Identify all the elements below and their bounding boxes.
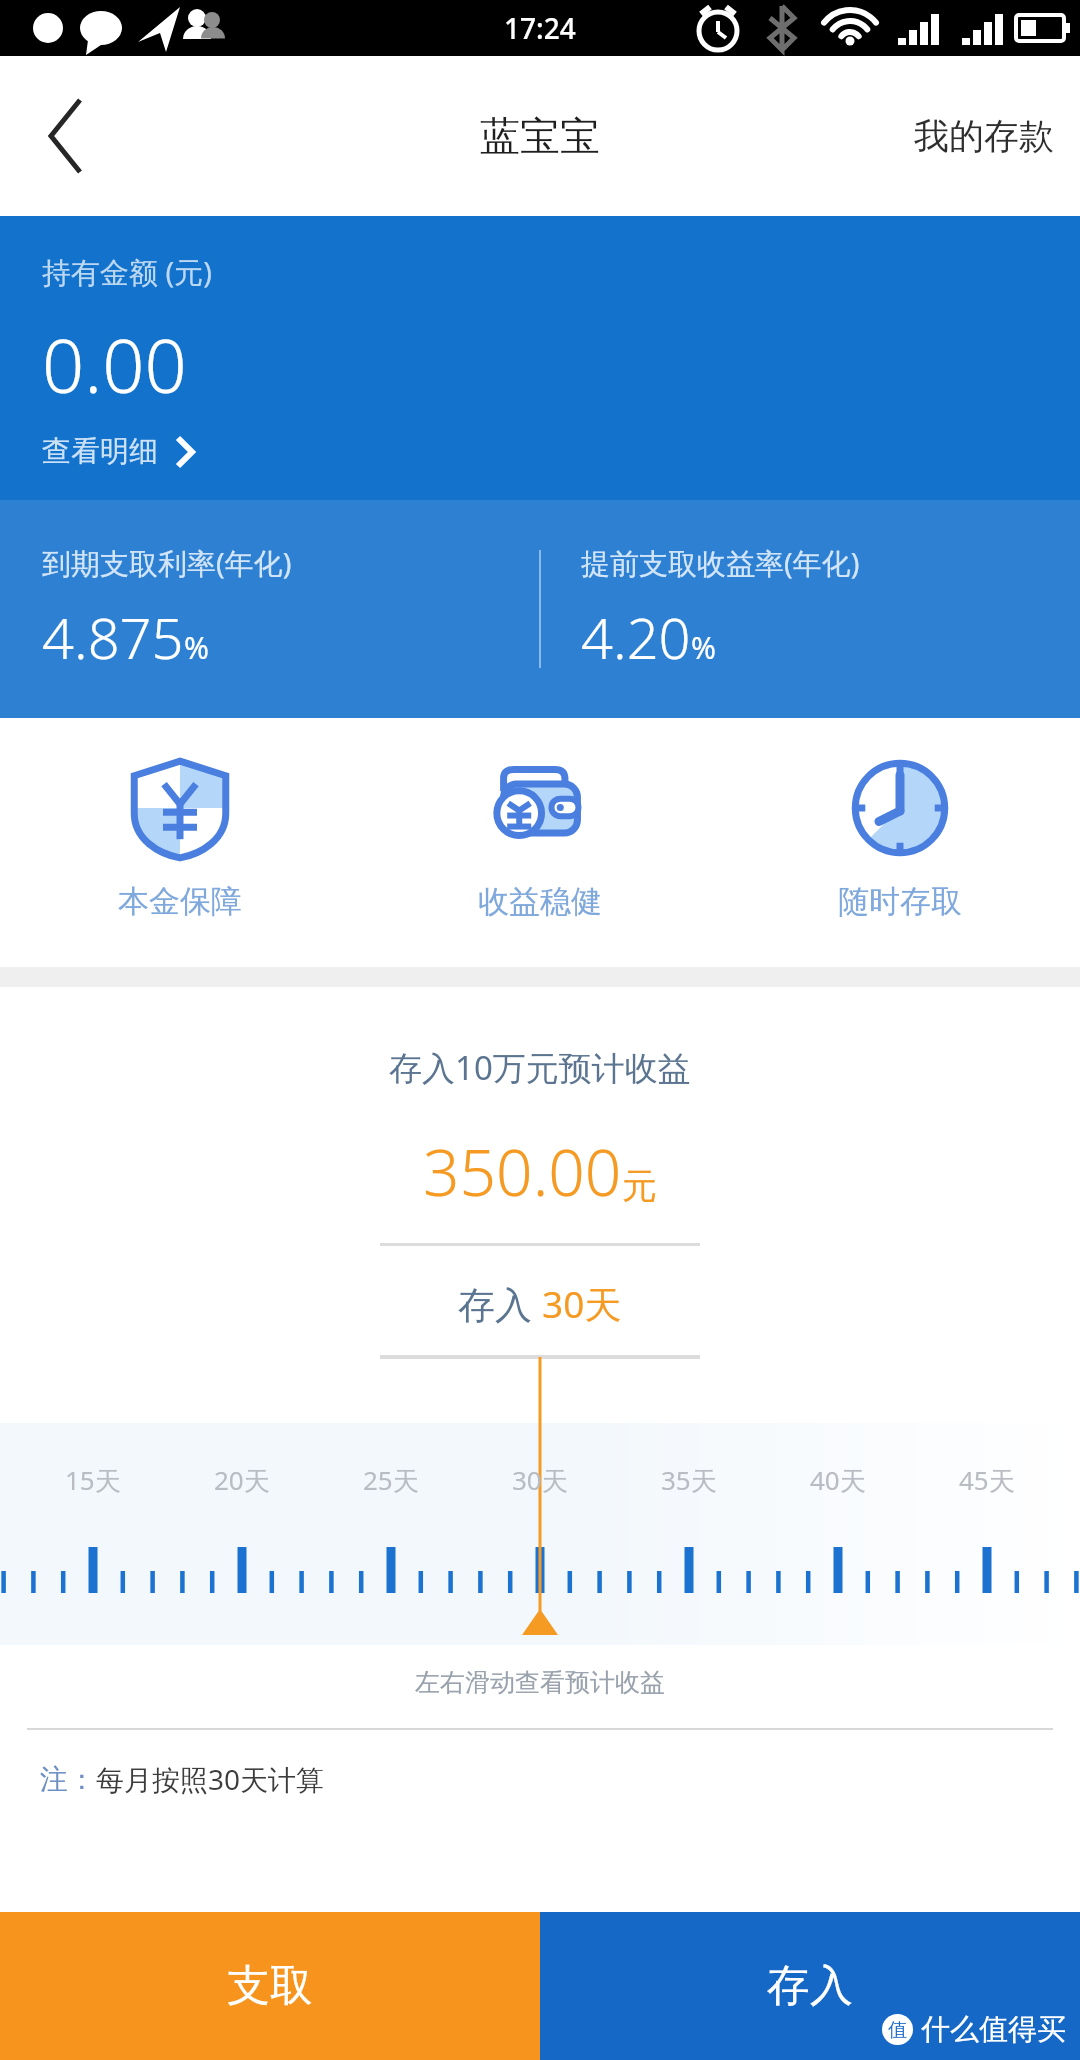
button[interactable]: Back [22,92,110,180]
staticText: 25天 [363,1462,419,1498]
staticText: % [184,627,209,668]
staticText: 左右滑动查看预计收益 [0,1667,1080,1698]
button[interactable]: 本金保障 [0,756,360,921]
staticText: 元 [622,1164,657,1208]
staticText: 35天 [661,1462,717,1498]
staticText: 0.00 [42,314,187,415]
staticText: 每月按照30天计算 [96,1760,325,1798]
staticText: 40天 [810,1462,866,1498]
other: 随时存取 [848,756,952,860]
staticText: 20天 [214,1462,270,1498]
button[interactable]: 存入 [540,1912,1080,2060]
staticText: 值 [888,2018,907,2042]
staticText: 30天 [512,1462,568,1498]
staticText: 持有金额 (元) [42,252,212,292]
other: 本金保障 [128,756,232,860]
button[interactable]: 我的存款 [888,92,1080,180]
staticText: 什么值得买 [921,2011,1066,2048]
staticText: 收益稳健 [478,882,602,921]
staticText: 4.20 [581,599,691,675]
staticText: 存入 [767,1959,853,2013]
staticText: 存入10万元预计收益 [389,1045,691,1090]
staticText: 30天 [542,1278,622,1329]
button[interactable]: 收益稳健 [360,756,720,921]
staticText: 我的存款 [914,114,1054,158]
button[interactable]: 随时存取 [720,756,1080,921]
staticText: 15天 [65,1462,121,1498]
staticText: 17:24 [504,9,576,47]
staticText: 提前支取收益率(年化) [581,543,860,583]
staticText: 支取 [227,1959,313,2013]
staticText: 注： [40,1762,96,1797]
button[interactable]: 查看明细 [42,429,200,474]
staticText: 4.875 [42,599,184,675]
staticText: 到期支取利率(年化) [42,543,292,583]
staticText: 查看明细 [42,433,158,470]
staticText: 存入 [458,1278,542,1329]
staticText: 350.00 [423,1128,622,1215]
other: 收益稳健 [488,756,592,860]
button[interactable]: 支取 [0,1912,540,2060]
staticText: 本金保障 [118,882,242,921]
staticText: % [691,627,716,668]
staticText: 45天 [959,1462,1015,1498]
staticText: 蓝宝宝 [480,111,600,161]
staticText: 随时存取 [838,882,962,921]
